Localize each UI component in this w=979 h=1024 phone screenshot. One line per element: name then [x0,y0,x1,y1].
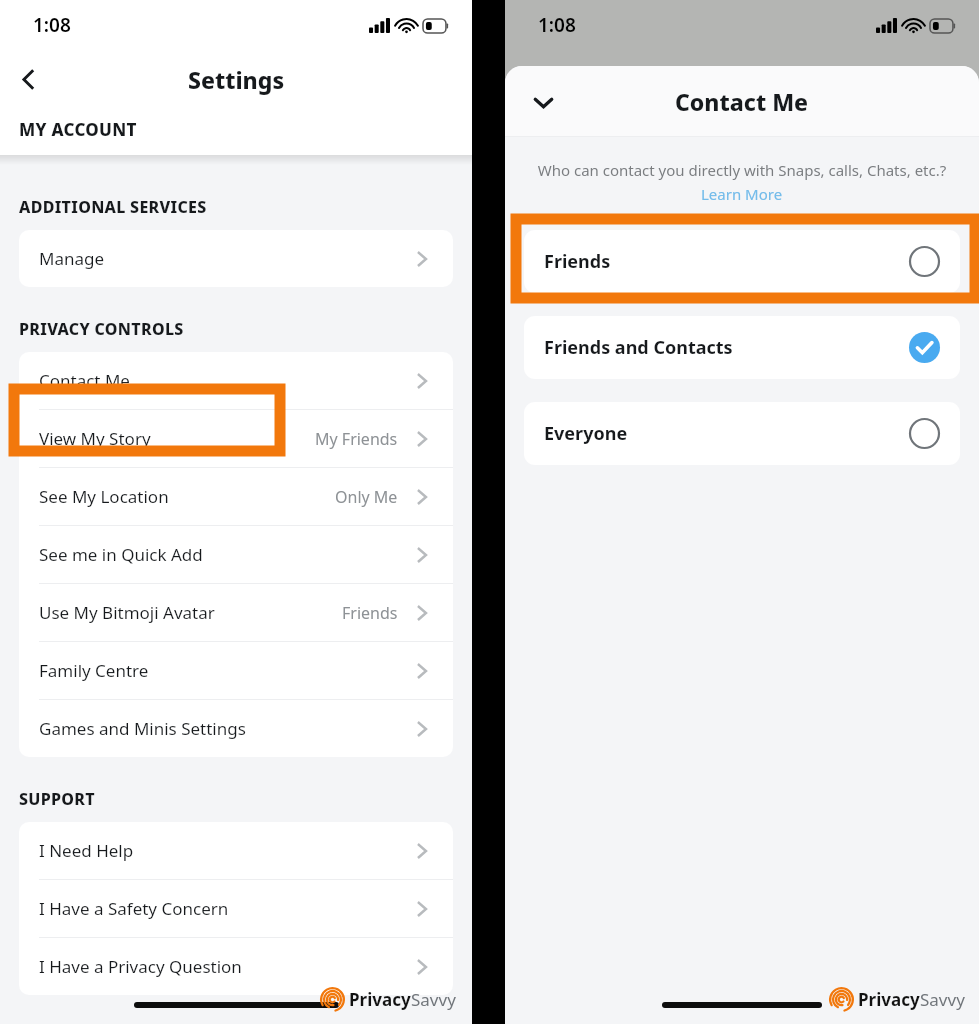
staticText: I Have a Safety Concern [39,897,229,920]
button[interactable]: View My Story [19,410,453,468]
button[interactable]: Back [6,57,50,101]
button[interactable]: I Need Help [19,822,453,880]
button[interactable]: I Have a Privacy Question [19,938,453,995]
button[interactable]: See My Location [19,468,453,526]
staticText: 1:08 [33,12,71,38]
button[interactable]: Use My Bitmoji Avatar [19,584,453,642]
staticText: ADDITIONAL SERVICES [19,196,207,218]
button[interactable]: Collapse [521,80,565,124]
staticText: Privacy [349,988,411,1011]
staticText: Settings [188,64,285,95]
button[interactable]: Everyone [524,402,960,465]
staticText: 1:08 [538,12,576,38]
staticText: Savvy [411,988,456,1011]
button[interactable]: Friends and Contacts [524,316,960,379]
staticText: SUPPORT [19,788,95,810]
staticText: See My Location [39,485,169,508]
button[interactable]: I Have a Safety Concern [19,880,453,938]
staticText: I Need Help [39,839,134,862]
staticText: Family Centre [39,659,149,682]
staticText: PRIVACY CONTROLS [19,318,184,340]
button[interactable]: Friends [524,230,960,293]
staticText: Contact Me [675,86,809,117]
staticText: Everyone [544,421,628,446]
button[interactable]: See me in Quick Add [19,526,453,584]
staticText: Friends [342,602,398,624]
button[interactable]: Family Centre [19,642,453,700]
staticText: Friends and Contacts [544,335,733,360]
staticText: I Have a Privacy Question [39,955,242,978]
staticText: View My Story [39,427,151,450]
staticText: Privacy [858,988,920,1011]
staticText: My Friends [315,428,398,450]
staticText: Learn More [701,184,783,204]
staticText: Savvy [920,988,965,1011]
staticText: Contact Me [39,369,130,392]
staticText: Who can contact you directly with Snaps,… [519,160,965,180]
button[interactable]: Learn More [701,184,783,204]
staticText: See me in Quick Add [39,543,203,566]
button[interactable]: Games and Minis Settings [19,700,453,757]
staticText: Manage [39,247,105,270]
staticText: Only Me [335,486,398,508]
staticText: Games and Minis Settings [39,717,246,740]
staticText: Use My Bitmoji Avatar [39,601,215,624]
staticText: MY ACCOUNT [19,118,137,141]
button[interactable]: Manage [19,230,453,287]
button[interactable]: Contact Me [19,352,453,410]
staticText: Friends [544,249,611,274]
